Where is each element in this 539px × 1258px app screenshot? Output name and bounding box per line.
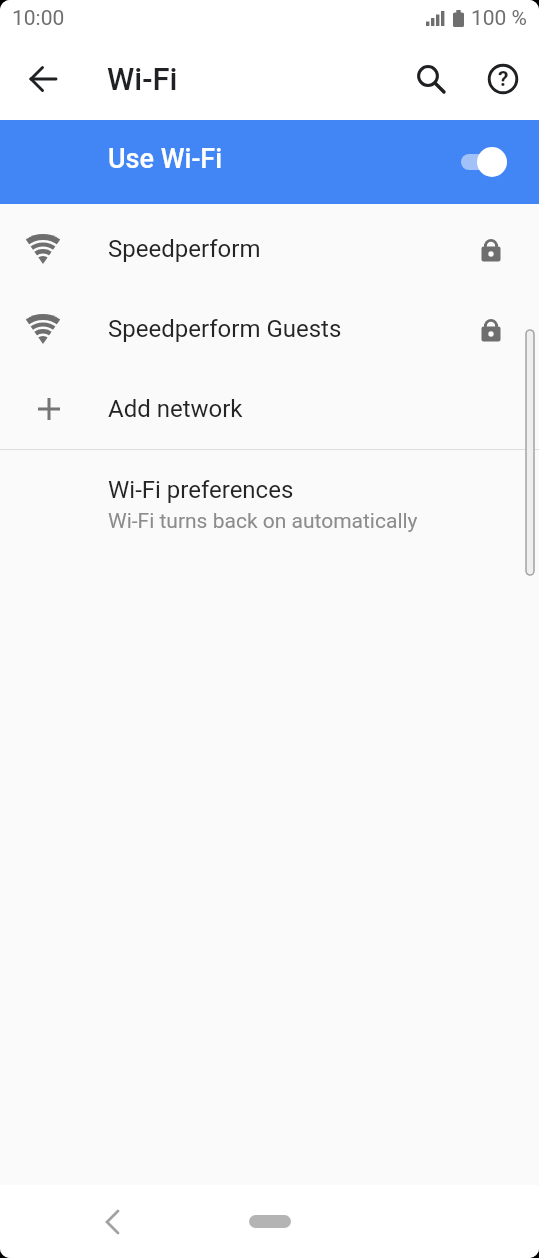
staticText: Speedperform Guests bbox=[108, 315, 342, 343]
staticText: Add network bbox=[108, 395, 243, 423]
staticText: 10:00 bbox=[12, 6, 65, 31]
staticText: 100 % bbox=[471, 6, 527, 31]
button[interactable] bbox=[249, 1215, 291, 1228]
button[interactable] bbox=[98, 1207, 128, 1237]
button[interactable] bbox=[28, 63, 60, 95]
button[interactable]: Add network bbox=[0, 369, 539, 449]
button[interactable]: Speedperform Guests bbox=[0, 289, 539, 369]
button[interactable]: Speedperform bbox=[0, 209, 539, 289]
staticText: Wi-Fi bbox=[107, 61, 178, 97]
button[interactable]: ? bbox=[488, 64, 518, 94]
staticText: ? bbox=[498, 67, 509, 92]
button[interactable]: Use Wi-Fi bbox=[0, 120, 539, 204]
staticText: Wi-Fi preferences bbox=[108, 476, 294, 504]
staticText: Speedperform bbox=[108, 235, 261, 263]
button[interactable]: Wi-Fi preferences bbox=[0, 450, 539, 534]
staticText: Wi-Fi turns back on automatically bbox=[108, 509, 418, 534]
button[interactable] bbox=[416, 64, 446, 94]
staticText: Use Wi-Fi bbox=[108, 143, 223, 175]
